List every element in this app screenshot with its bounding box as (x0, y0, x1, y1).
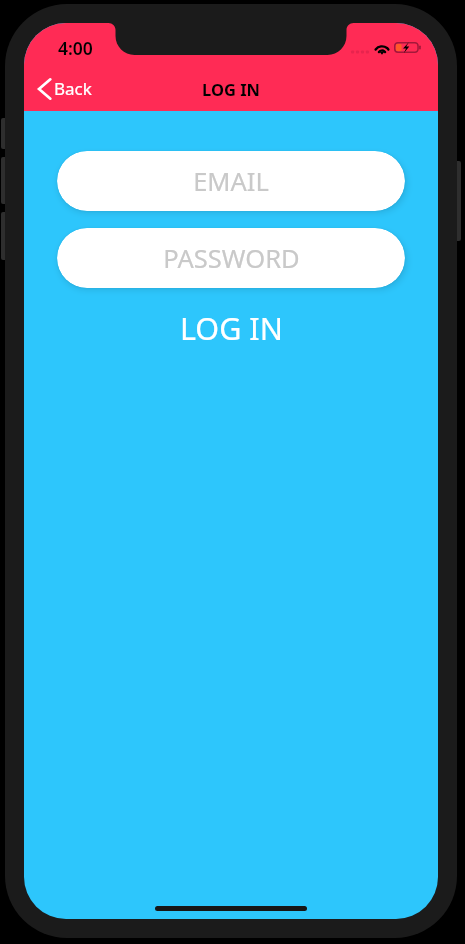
button[interactable]: EMAIL (57, 151, 405, 211)
other: Back (38, 78, 51, 100)
button[interactable]: LOG IN (24, 307, 438, 349)
button[interactable]: PASSWORD (57, 228, 405, 288)
staticText: EMAIL (193, 164, 269, 199)
staticText: LOG IN (202, 78, 261, 100)
staticText: Back (54, 77, 92, 100)
staticText: LOG IN (180, 307, 283, 349)
button[interactable]: Back (24, 73, 102, 109)
staticText: PASSWORD (163, 241, 300, 276)
staticText: 4:00 (58, 36, 93, 60)
